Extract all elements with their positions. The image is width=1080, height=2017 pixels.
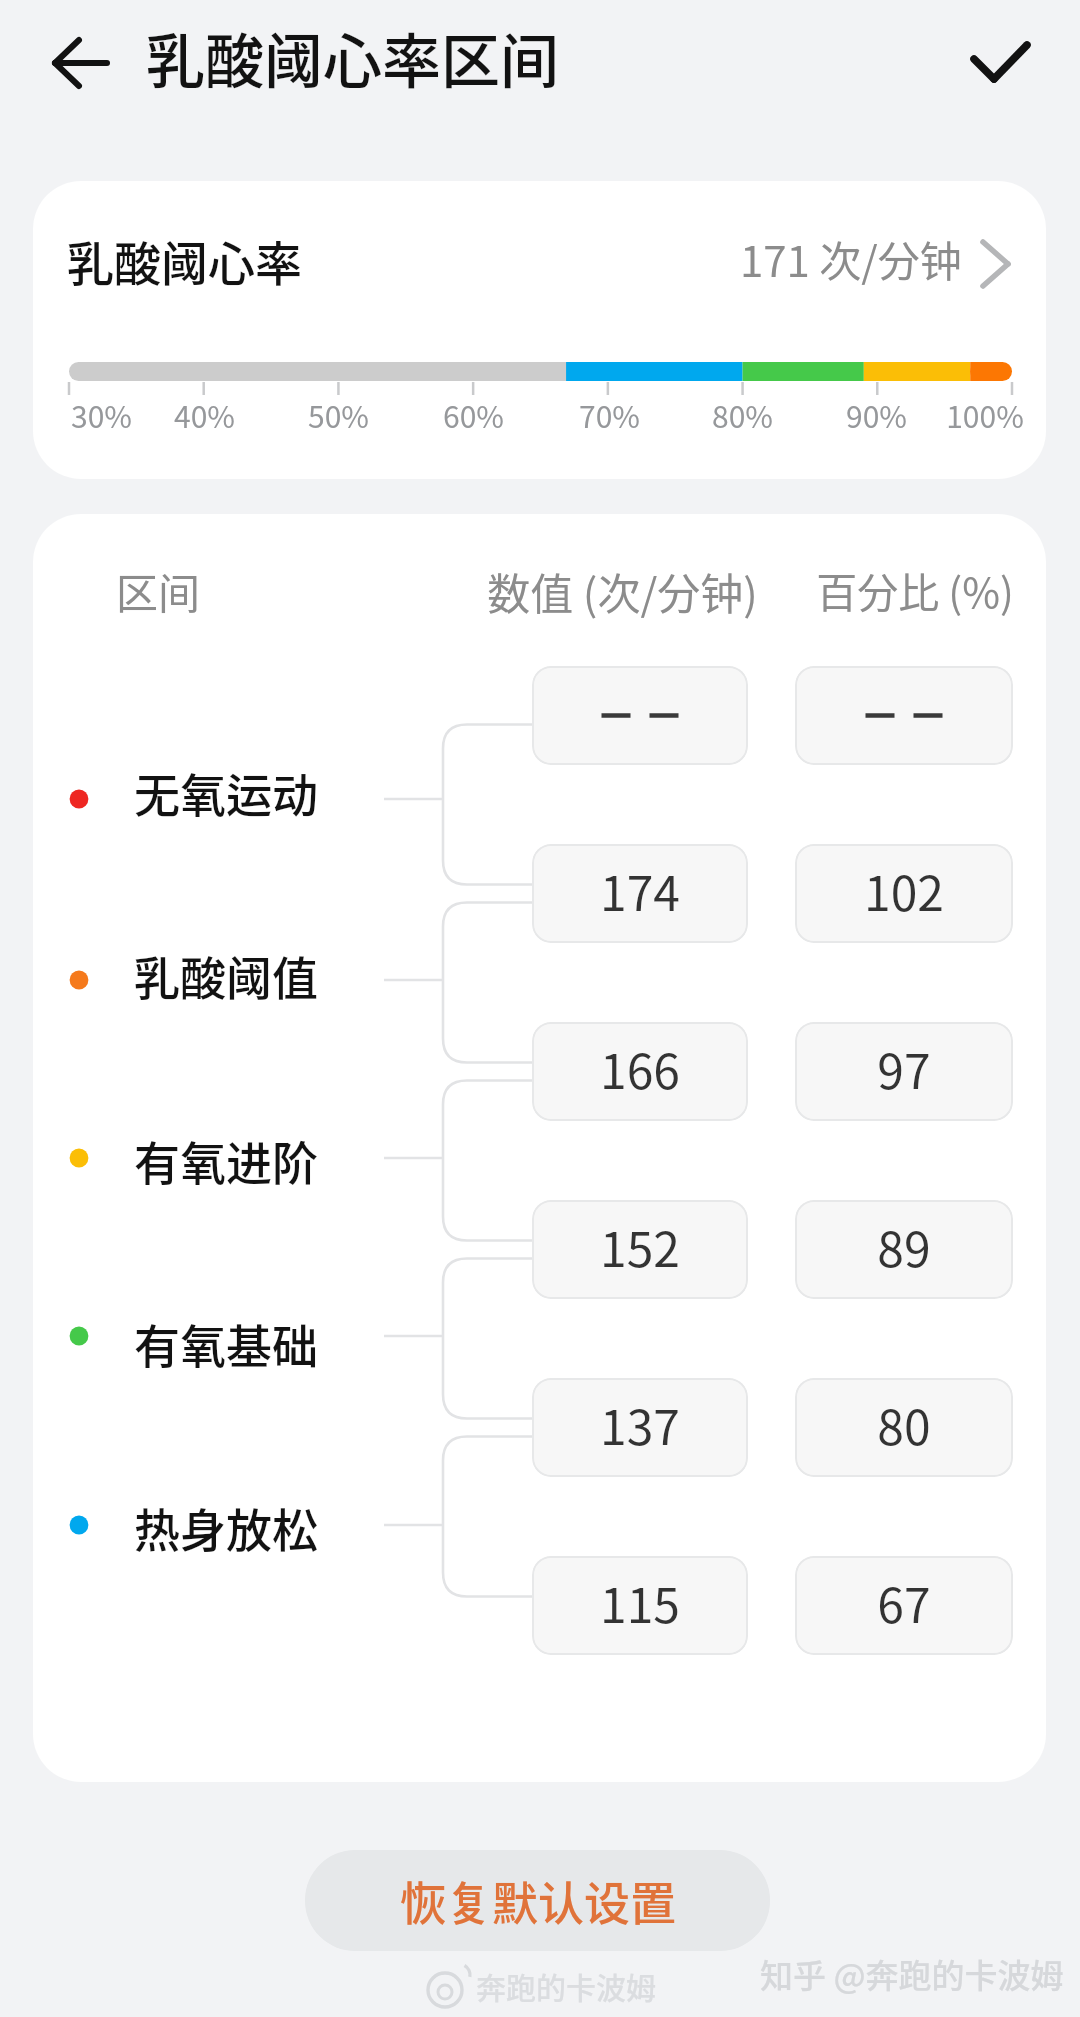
staticText: 奔跑的卡波姆 — [476, 1964, 656, 2007]
staticText: 百分比 (%) — [816, 560, 1014, 619]
staticText: 166 — [600, 1033, 680, 1103]
button[interactable]: 恢复默认设置 — [305, 1850, 770, 1951]
staticText: 60% — [443, 393, 504, 436]
staticText: 有氧基础 — [134, 1310, 318, 1377]
staticText: 乳酸阈心率区间 — [146, 15, 560, 100]
button[interactable]: Back — [28, 18, 118, 108]
button[interactable]: 乳酸阈心率 — [33, 181, 1046, 291]
staticText: 50% — [308, 393, 369, 436]
button[interactable]: 166 — [532, 1022, 748, 1121]
staticText: 90% — [846, 393, 907, 436]
staticText: 97 — [877, 1033, 931, 1103]
staticText: 有氧进阶 — [134, 1127, 318, 1194]
staticText: 80% — [712, 393, 773, 436]
staticText: 67 — [877, 1567, 931, 1637]
staticText: 152 — [600, 1211, 680, 1281]
button[interactable]: 174 — [532, 844, 748, 943]
staticText: 137 — [600, 1389, 680, 1459]
staticText: 171 次/分钟 — [740, 228, 962, 289]
staticText: 无氧运动 — [134, 759, 318, 826]
button[interactable]: 80 — [795, 1378, 1013, 1477]
staticText: 热身放松 — [134, 1494, 318, 1561]
staticText: 30% — [71, 393, 132, 436]
staticText: 40% — [174, 393, 235, 436]
staticText: 89 — [877, 1211, 931, 1281]
button[interactable] — [532, 666, 748, 765]
staticText: 恢复默认设置 — [400, 1867, 676, 1934]
staticText: 乳酸阈心率 — [67, 226, 302, 294]
staticText: 100% — [946, 393, 1024, 436]
staticText: 102 — [864, 855, 944, 925]
staticText: 数值 (次/分钟) — [487, 560, 758, 622]
button[interactable]: 115 — [532, 1556, 748, 1655]
staticText: 乳酸阈值 — [134, 942, 318, 1009]
staticText: 知乎 @奔跑的卡波姆 — [760, 1950, 1064, 1998]
staticText: 区间 — [116, 560, 201, 621]
staticText: 80 — [877, 1389, 931, 1459]
button[interactable] — [795, 666, 1013, 765]
button[interactable]: Confirm — [955, 16, 1047, 108]
button[interactable]: 102 — [795, 844, 1013, 943]
button[interactable]: 137 — [532, 1378, 748, 1477]
staticText: 174 — [600, 855, 680, 925]
staticText: 70% — [579, 393, 640, 436]
button[interactable]: 97 — [795, 1022, 1013, 1121]
button[interactable]: 152 — [532, 1200, 748, 1299]
button[interactable]: 89 — [795, 1200, 1013, 1299]
staticText: 115 — [600, 1567, 680, 1637]
button[interactable]: 67 — [795, 1556, 1013, 1655]
